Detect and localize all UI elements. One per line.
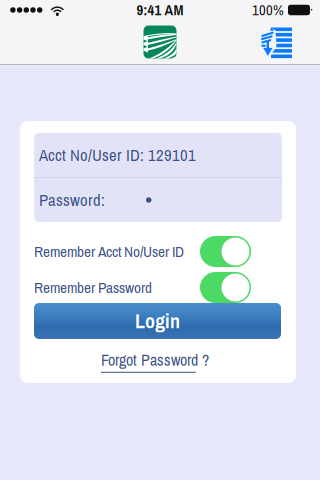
staticText: Acct No/User ID: 129101 xyxy=(39,144,196,166)
button[interactable]: Remember Acct No/User ID xyxy=(34,236,251,267)
staticText: Remember Acct No/User ID xyxy=(34,241,184,262)
staticText: 100% xyxy=(252,0,284,20)
staticText: Login xyxy=(135,307,180,334)
staticText: Remember Password xyxy=(34,277,152,298)
staticText: Password: xyxy=(39,189,105,211)
button[interactable]: Forgot Password ? xyxy=(101,348,209,374)
staticText: 9:41 AM xyxy=(136,0,183,20)
button[interactable]: Select account xyxy=(259,25,292,58)
staticText: Forgot Password ? xyxy=(101,349,209,371)
button[interactable]: Remember Password xyxy=(34,272,251,303)
button[interactable]: Home xyxy=(143,25,176,58)
button[interactable]: Login xyxy=(34,303,281,339)
